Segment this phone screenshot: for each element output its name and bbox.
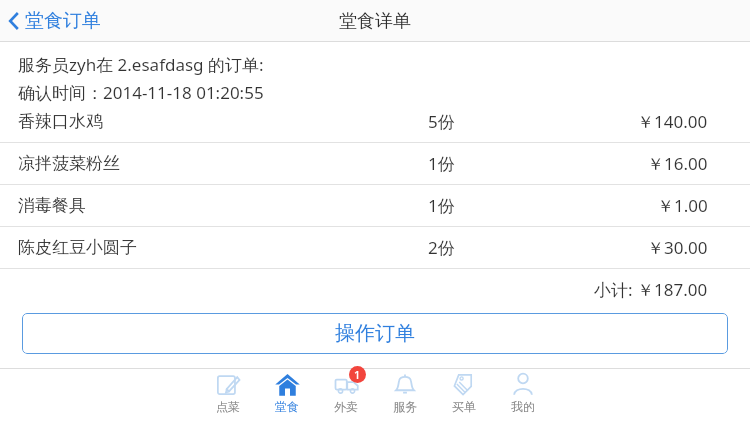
other: 外卖 xyxy=(334,372,359,397)
button[interactable]: 小计: ￥187.00 xyxy=(0,269,750,309)
staticText: 操作订单 xyxy=(335,321,415,346)
other: 买单 xyxy=(452,372,476,396)
button[interactable]: 买单 xyxy=(434,371,493,420)
staticText: 1份 xyxy=(428,194,455,217)
button[interactable]: 堂食 xyxy=(257,371,316,420)
staticText: 消毒餐具 xyxy=(18,195,86,216)
staticText: ￥30.00 xyxy=(647,236,708,259)
staticText: 确认时间：2014-11-18 01:20:55 xyxy=(18,81,264,104)
staticText: 香辣口水鸡 xyxy=(18,111,103,132)
button[interactable]: 香辣口水鸡 xyxy=(0,101,750,142)
staticText: 小计: ￥187.00 xyxy=(594,278,708,301)
button[interactable]: 陈皮红豆小圆子 xyxy=(0,227,750,268)
button[interactable]: 外卖 xyxy=(316,371,375,420)
button[interactable]: 凉拌菠菜粉丝 xyxy=(0,143,750,184)
staticText: 服务员zyh在 2.esafdasg 的订单: xyxy=(18,53,264,76)
staticText: ￥16.00 xyxy=(647,152,708,175)
staticText: 我的 xyxy=(511,399,535,414)
other: 点菜 xyxy=(217,373,240,396)
staticText: 买单 xyxy=(452,399,476,414)
staticText: 点菜 xyxy=(216,399,240,414)
staticText: 服务 xyxy=(393,399,417,414)
staticText: 外卖 xyxy=(334,399,358,414)
button[interactable]: 我的 xyxy=(493,371,552,420)
staticText: ￥1.00 xyxy=(657,194,708,217)
other: 堂食 xyxy=(275,372,300,397)
staticText: 2份 xyxy=(428,236,455,259)
staticText: ￥140.00 xyxy=(637,110,708,133)
staticText: 堂食详单 xyxy=(339,10,411,33)
button[interactable]: 点菜 xyxy=(198,371,257,420)
staticText: 堂食 xyxy=(275,399,299,414)
other: 我的 xyxy=(511,372,535,396)
button[interactable]: 堂食订单 xyxy=(0,0,113,42)
button[interactable]: 服务 xyxy=(375,371,434,420)
button[interactable]: 操作订单 xyxy=(22,313,728,354)
staticText: 5份 xyxy=(428,110,455,133)
staticText: 1份 xyxy=(428,152,455,175)
staticText: 凉拌菠菜粉丝 xyxy=(18,153,120,174)
staticText: 堂食订单 xyxy=(25,9,101,33)
staticText: 1 xyxy=(354,367,361,382)
button[interactable]: 消毒餐具 xyxy=(0,185,750,226)
staticText: 陈皮红豆小圆子 xyxy=(18,237,137,258)
other: 服务 xyxy=(393,372,417,396)
